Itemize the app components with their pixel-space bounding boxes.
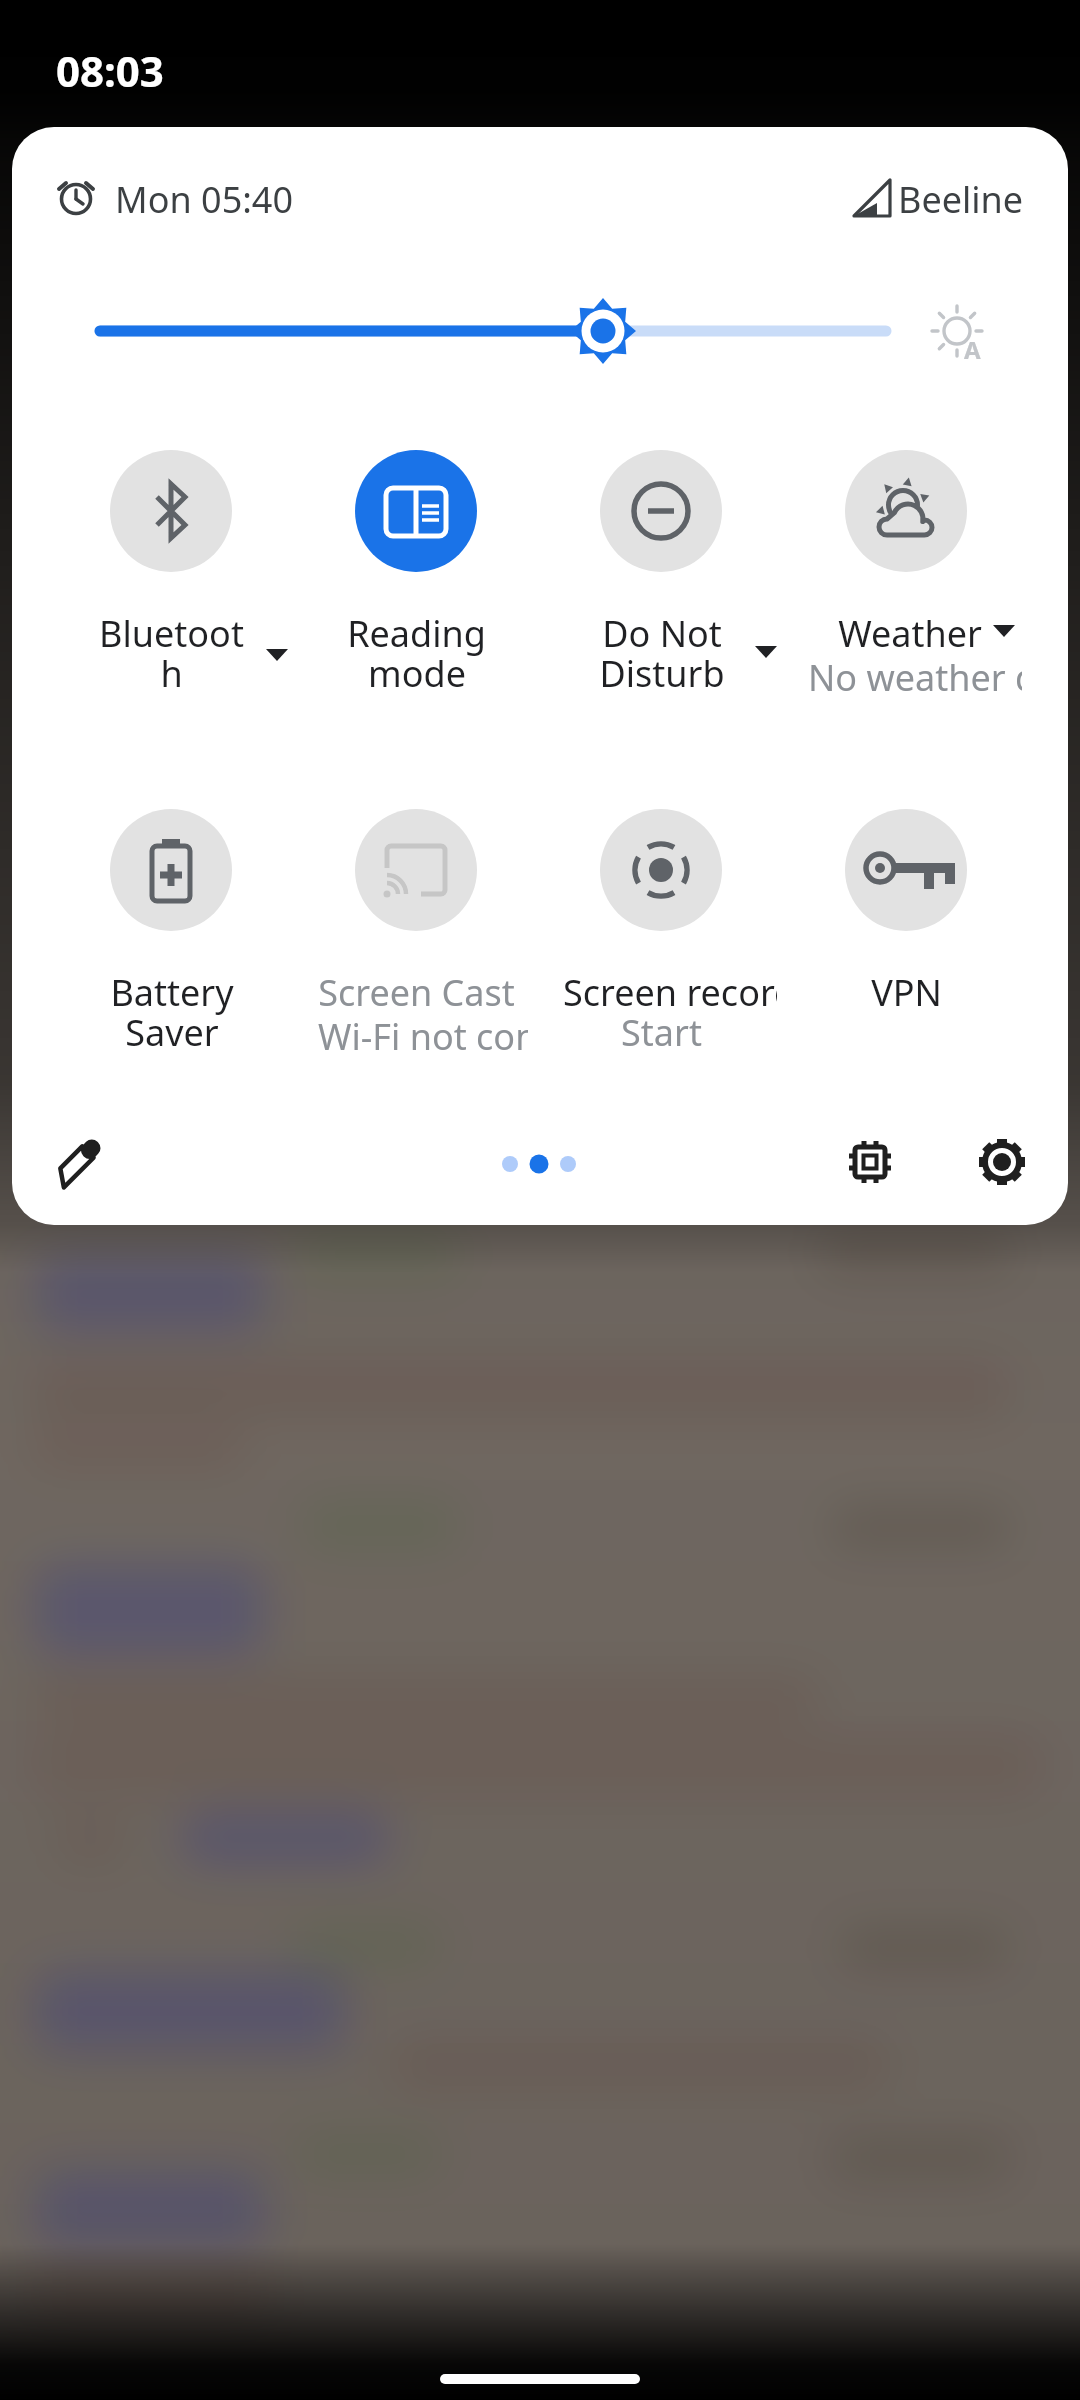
- button[interactable]: [600, 450, 722, 572]
- staticText: Saver: [125, 1008, 219, 1057]
- staticText: Weather: [838, 609, 982, 658]
- button[interactable]: [600, 809, 722, 931]
- button[interactable]: [42, 1126, 114, 1198]
- staticText: Disturb: [599, 649, 725, 698]
- button[interactable]: [845, 809, 967, 931]
- staticText: No weather data: [808, 653, 1022, 702]
- staticText: Screen record: [563, 968, 777, 1017]
- staticText: Screen Cast: [318, 968, 515, 1017]
- staticText: VPN: [871, 968, 942, 1017]
- staticText: Do Not: [602, 609, 722, 658]
- staticText: Mon 05:40: [115, 175, 294, 224]
- staticText: A: [964, 333, 981, 366]
- button[interactable]: [110, 450, 232, 572]
- staticText: 08:03: [56, 42, 164, 99]
- staticText: Beeline: [898, 175, 1024, 224]
- staticText: Start: [621, 1008, 702, 1057]
- staticText: Battery: [110, 968, 234, 1017]
- button[interactable]: [834, 1126, 906, 1198]
- staticText: h: [160, 649, 183, 698]
- button[interactable]: [845, 450, 967, 572]
- button[interactable]: [110, 809, 232, 931]
- staticText: Reading: [347, 609, 486, 658]
- button[interactable]: [355, 450, 477, 572]
- button[interactable]: [355, 809, 477, 931]
- staticText: Wi-Fi not connected: [318, 1012, 528, 1061]
- button[interactable]: [966, 1126, 1038, 1198]
- staticText: Bluetoot: [99, 609, 244, 658]
- staticText: mode: [368, 649, 466, 698]
